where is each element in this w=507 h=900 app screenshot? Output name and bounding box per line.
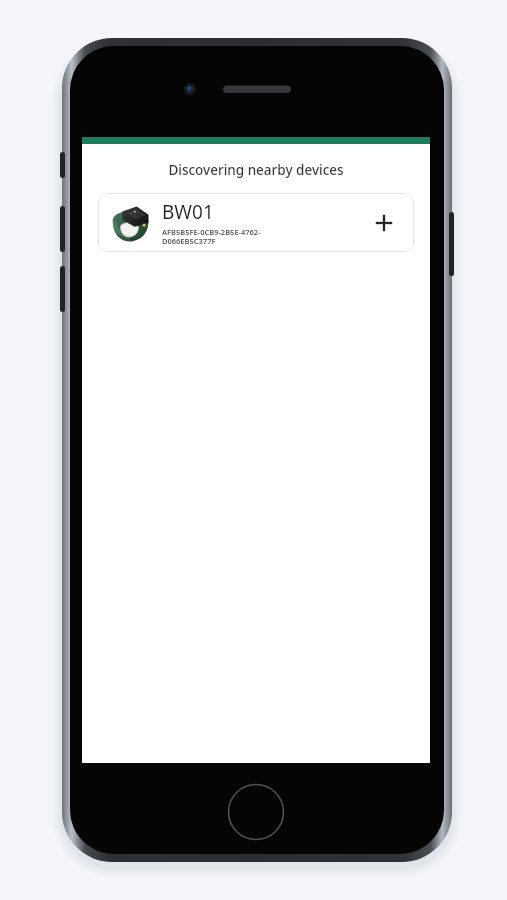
staticText: BW01 bbox=[162, 199, 214, 225]
staticText: Discovering nearby devices bbox=[82, 161, 430, 179]
button[interactable]: Add device BW01 bbox=[362, 201, 406, 245]
staticText: AFB5B5FE-0CB9-2B5E-4762- D066EB5C377F bbox=[162, 227, 261, 247]
button[interactable]: BW01 bbox=[98, 193, 414, 252]
